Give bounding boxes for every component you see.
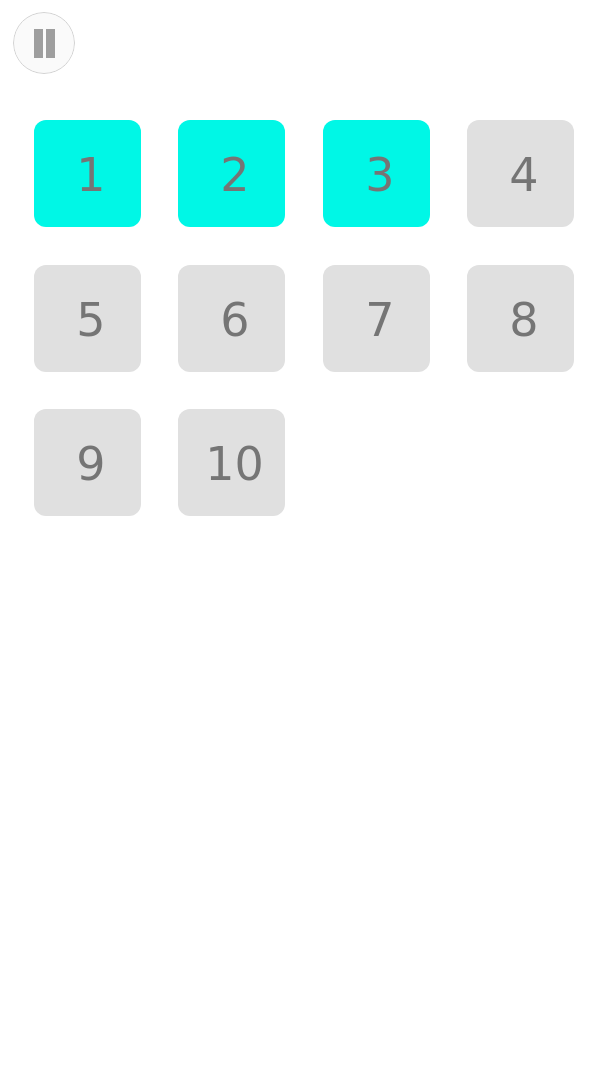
button[interactable]: Pause (13, 12, 75, 74)
staticText: 7 (365, 293, 395, 347)
staticText: 9 (76, 437, 106, 491)
staticText: 4 (509, 148, 539, 202)
button[interactable]: 2 (178, 120, 285, 227)
button[interactable]: 7 (323, 265, 430, 372)
button[interactable]: 3 (323, 120, 430, 227)
staticText: 2 (220, 148, 250, 202)
staticText: 5 (76, 293, 106, 347)
button[interactable]: 6 (178, 265, 285, 372)
button[interactable]: 1 (34, 120, 141, 227)
staticText: 8 (509, 293, 539, 347)
staticText: 1 (76, 148, 106, 202)
button[interactable]: 10 (178, 409, 285, 516)
button[interactable]: 5 (34, 265, 141, 372)
staticText: 10 (205, 437, 264, 491)
button[interactable]: 8 (467, 265, 574, 372)
button[interactable]: 4 (467, 120, 574, 227)
staticText: 6 (220, 293, 250, 347)
staticText: 3 (365, 148, 395, 202)
button[interactable]: 9 (34, 409, 141, 516)
